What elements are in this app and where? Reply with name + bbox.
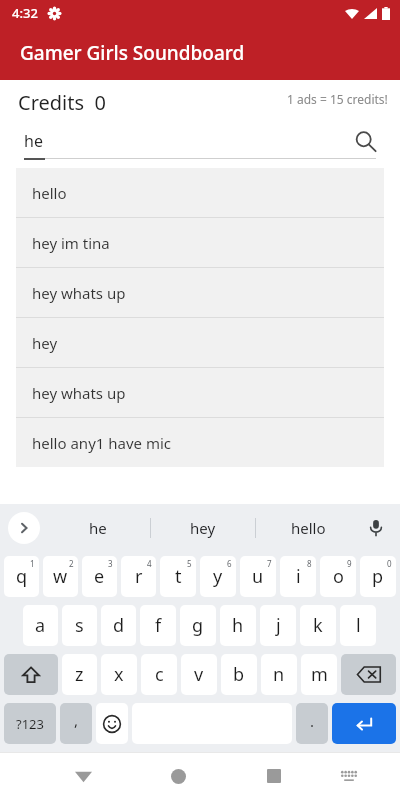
staticText: hello any1 have mic — [32, 433, 172, 453]
staticText: g — [192, 613, 204, 638]
button[interactable]: z — [62, 654, 97, 695]
button[interactable]: c — [141, 654, 177, 695]
button[interactable]: hey — [16, 318, 384, 367]
button[interactable]: Switch keyboard — [317, 752, 381, 800]
button[interactable]: Recents — [242, 752, 306, 800]
button[interactable]: t — [160, 556, 196, 597]
button[interactable]: o — [320, 556, 356, 597]
staticText: 4 — [147, 558, 152, 569]
button[interactable]: m — [301, 654, 337, 695]
staticText: h — [232, 613, 244, 638]
staticText: 4:32 — [12, 4, 38, 22]
button[interactable]: n — [261, 654, 297, 695]
button[interactable]: hey whats up — [16, 268, 384, 317]
staticText: p — [372, 564, 384, 589]
staticText: hey whats up — [32, 383, 126, 403]
button[interactable]: k — [300, 605, 336, 646]
staticText: b — [233, 662, 245, 687]
staticText: t — [175, 564, 182, 589]
button[interactable]: hello any1 have mic — [16, 418, 384, 467]
staticText: v — [194, 662, 204, 687]
staticText: l — [356, 613, 361, 638]
button[interactable]: Enter — [332, 703, 396, 744]
staticText: 8 — [307, 558, 312, 569]
staticText: 0 — [387, 558, 392, 569]
staticText: 1 — [30, 558, 35, 569]
button[interactable]: w — [43, 556, 78, 597]
staticText: hey whats up — [32, 283, 126, 303]
staticText: Gamer Girls Soundboard — [20, 40, 245, 66]
button[interactable]: u — [240, 556, 276, 597]
button[interactable]: j — [260, 605, 296, 646]
button[interactable]: hey — [151, 504, 255, 552]
button[interactable]: hello — [16, 168, 384, 217]
button[interactable]: v — [181, 654, 217, 695]
staticText: a — [35, 613, 46, 638]
button[interactable]: Backspace — [341, 654, 396, 695]
button[interactable]: q — [4, 556, 39, 597]
staticText: j — [276, 613, 281, 638]
button[interactable]: Gamer Girls Soundboard — [0, 26, 400, 80]
button[interactable]: Expand suggestions — [8, 512, 40, 544]
button[interactable]: d — [101, 605, 136, 646]
button[interactable]: a — [23, 605, 58, 646]
button[interactable]: s — [62, 605, 97, 646]
staticText: 2 — [69, 558, 74, 569]
button[interactable]: Emoji — [96, 703, 128, 744]
button[interactable]: he — [46, 504, 150, 552]
button[interactable]: hey whats up — [16, 368, 384, 417]
staticText: he — [24, 130, 43, 152]
staticText: 7 — [267, 558, 272, 569]
button[interactable]: l — [340, 605, 376, 646]
staticText: u — [252, 564, 264, 589]
button[interactable]: r — [121, 556, 156, 597]
staticText: hello — [32, 183, 67, 203]
button[interactable]: Back — [52, 752, 115, 800]
button[interactable]: ?123 — [4, 703, 56, 744]
staticText: he — [89, 518, 107, 538]
staticText: n — [273, 662, 285, 687]
button[interactable]: b — [221, 654, 257, 695]
button[interactable]: f — [140, 605, 176, 646]
staticText: 1 ads = 15 credits! — [287, 91, 388, 107]
staticText: s — [75, 613, 84, 638]
button[interactable]: e — [82, 556, 117, 597]
staticText: ?123 — [16, 715, 44, 733]
button[interactable]: Voice input — [364, 516, 388, 540]
staticText: m — [311, 662, 328, 687]
staticText: hey — [32, 333, 58, 353]
button[interactable]: x — [101, 654, 137, 695]
button[interactable]: hello — [256, 504, 360, 552]
staticText: y — [213, 564, 223, 589]
staticText: i — [296, 564, 301, 589]
button[interactable]: hey im tina — [16, 218, 384, 267]
staticText: x — [114, 662, 124, 687]
staticText: z — [75, 662, 84, 687]
staticText: o — [333, 564, 344, 589]
button[interactable]: . — [296, 703, 328, 744]
button[interactable]: Search — [354, 130, 376, 152]
button[interactable]: , — [60, 703, 92, 744]
button[interactable]: p — [360, 556, 396, 597]
staticText: e — [94, 564, 105, 589]
staticText: . — [310, 711, 315, 731]
staticText: 3 — [108, 558, 113, 569]
staticText: 6 — [227, 558, 232, 569]
staticText: Credits 0 — [18, 89, 106, 116]
staticText: q — [16, 564, 28, 589]
button[interactable]: Home — [146, 752, 210, 800]
staticText: hey im tina — [32, 233, 110, 253]
button[interactable]: i — [280, 556, 316, 597]
button[interactable]: g — [180, 605, 216, 646]
staticText: d — [113, 613, 125, 638]
staticText: hey — [190, 518, 216, 538]
staticText: f — [155, 613, 162, 638]
staticText: 9 — [347, 558, 352, 569]
button[interactable]: h — [220, 605, 256, 646]
staticText: r — [135, 564, 143, 589]
button[interactable]: y — [200, 556, 236, 597]
staticText: hello — [291, 518, 326, 538]
button[interactable]: Shift — [4, 654, 58, 695]
staticText: w — [53, 564, 68, 589]
